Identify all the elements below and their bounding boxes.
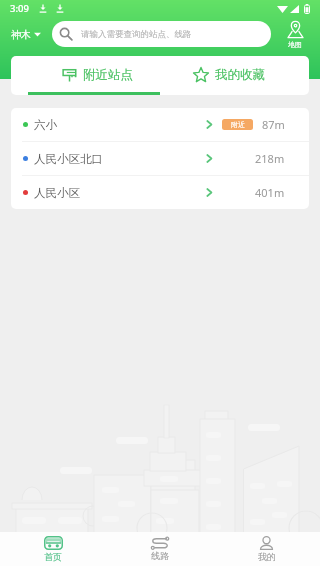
staticText: 附近站点 (83, 67, 133, 83)
staticText: 我的收藏 (215, 67, 265, 83)
staticText: 我的 (258, 551, 276, 562)
staticText: 附近 (231, 120, 245, 129)
button[interactable]: 人民小区 (11, 176, 309, 209)
button[interactable]: 请输入需要查询的站点、线路 (52, 21, 271, 47)
staticText: 人民小区北口 (34, 152, 103, 166)
staticText: 请输入需要查询的站点、线路 (81, 29, 192, 40)
staticText: 人民小区 (34, 186, 80, 200)
staticText: 218m (255, 151, 285, 166)
staticText: 3:09 (10, 2, 29, 15)
staticText: 六小 (34, 118, 57, 132)
button[interactable]: 地图 (278, 21, 312, 49)
button[interactable]: 附近站点 (28, 56, 160, 95)
button[interactable]: 六小 (11, 108, 309, 141)
button[interactable]: 我的 (213, 532, 320, 566)
button[interactable]: 神木 (11, 24, 41, 44)
staticText: 401m (255, 185, 285, 200)
staticText: 87m (262, 117, 285, 132)
button[interactable]: 首页 (0, 532, 106, 566)
staticText: 神木 (11, 28, 31, 41)
staticText: 首页 (44, 551, 62, 562)
button[interactable]: 线路 (106, 532, 213, 566)
button[interactable]: 我的收藏 (160, 56, 292, 95)
button[interactable]: 人民小区北口 (11, 142, 309, 175)
staticText: 线路 (151, 550, 169, 561)
staticText: 地图 (288, 40, 302, 49)
